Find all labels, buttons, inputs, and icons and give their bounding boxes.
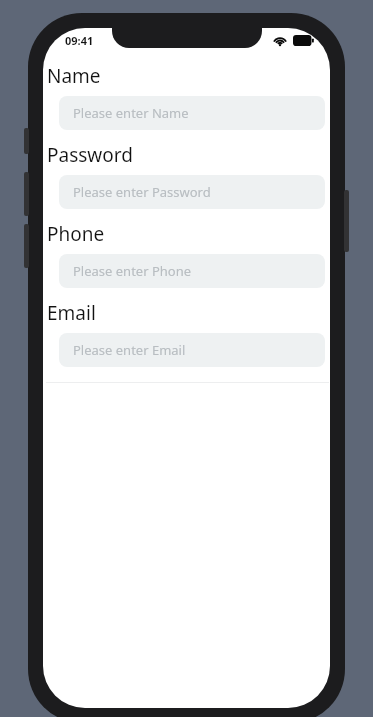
- button[interactable]: Please enter Password: [59, 175, 325, 209]
- other: Volume up: [24, 172, 29, 216]
- other: Power: [344, 190, 349, 252]
- staticText: Please enter Email: [73, 341, 186, 359]
- other: Volume down: [24, 224, 29, 268]
- staticText: Please enter Phone: [73, 262, 192, 280]
- staticText: 09:41: [65, 33, 94, 48]
- staticText: Name: [47, 63, 101, 89]
- staticText: Please enter Name: [73, 104, 189, 122]
- button[interactable]: Please enter Name: [59, 96, 325, 130]
- staticText: Email: [47, 300, 96, 326]
- staticText: Phone: [47, 221, 105, 247]
- button[interactable]: Please enter Email: [59, 333, 325, 367]
- staticText: Password: [47, 142, 133, 168]
- other: Silent switch: [24, 128, 29, 154]
- button[interactable]: Please enter Phone: [59, 254, 325, 288]
- staticText: Please enter Password: [73, 183, 211, 201]
